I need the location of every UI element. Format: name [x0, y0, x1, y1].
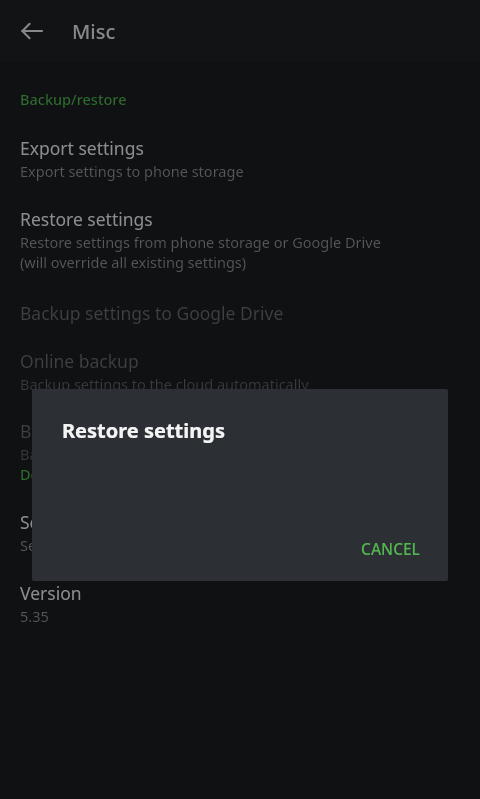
staticText: CANCEL: [361, 538, 420, 559]
button[interactable]: Backup interval: [0, 394, 480, 464]
button[interactable]: Export settings: [0, 109, 480, 181]
staticText: Backup settings to the cloud automatical…: [20, 374, 309, 394]
staticText: Send a log report to the developer: [20, 535, 254, 555]
staticText: Backup interval: [20, 419, 148, 443]
button[interactable]: Restore settings: [0, 181, 480, 272]
staticText: 5.35: [20, 606, 49, 626]
staticText: Backup once a day: [20, 444, 147, 464]
staticText: Export settings: [20, 136, 144, 160]
staticText: Version: [20, 581, 82, 605]
staticText: Backup/restore: [20, 89, 127, 109]
staticText: Export settings to phone storage: [20, 161, 244, 181]
staticText: Development corner: [20, 464, 163, 484]
staticText: Restore settings: [20, 207, 153, 231]
staticText: Send log report: [20, 510, 148, 534]
staticText: Online backup: [20, 349, 139, 373]
button[interactable]: Back: [8, 7, 56, 55]
staticText: Misc: [72, 18, 116, 45]
staticText: Restore settings: [62, 417, 225, 444]
staticText: Backup settings to Google Drive: [20, 301, 284, 325]
button[interactable]: Backup settings to Google Drive: [0, 272, 480, 325]
button[interactable]: Version: [0, 555, 480, 626]
staticText: Restore settings from phone storage or G…: [20, 232, 381, 272]
button[interactable]: Send log report: [0, 484, 480, 555]
button[interactable]: Online backup: [0, 325, 480, 394]
button[interactable]: CANCEL: [345, 530, 436, 567]
